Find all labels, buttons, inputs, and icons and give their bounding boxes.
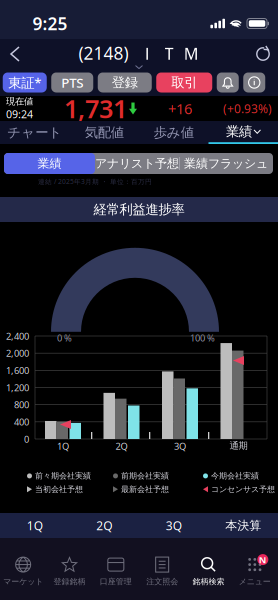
staticText: チャート — [7, 124, 62, 141]
staticText: 取引 — [171, 74, 197, 91]
button[interactable]: 取引 — [156, 72, 212, 92]
button[interactable]: 歩み値 — [139, 121, 208, 144]
button[interactable]: マーケット — [0, 548, 46, 593]
staticText: 1Q — [57, 440, 69, 452]
staticText: 当初会社予想 — [35, 484, 83, 494]
staticText: 2,000 — [6, 347, 29, 359]
staticText: 1Q — [27, 517, 43, 533]
staticText: +16 — [168, 99, 192, 118]
button[interactable]: 3Q — [139, 513, 208, 538]
staticText: 2,400 — [6, 330, 29, 342]
staticText: 通期 — [229, 440, 247, 451]
staticText: 2Q — [96, 517, 112, 533]
button[interactable]: 注文照会 — [139, 548, 185, 593]
staticText: 本決算 — [225, 518, 261, 533]
button[interactable]: Alerts — [217, 72, 239, 92]
button[interactable]: Refresh — [248, 39, 278, 69]
staticText: 連結 / 2025年3月期 ・ 単位：百万円 — [38, 177, 152, 186]
staticText: 0 % — [57, 332, 72, 344]
staticText: 2Q — [115, 440, 127, 452]
staticText: 1,200 — [6, 381, 29, 394]
button[interactable]: チャート — [0, 121, 69, 144]
staticText: (+0.93%) — [223, 100, 272, 116]
button[interactable]: 銘柄検索 — [185, 548, 232, 593]
staticText: 最新会社予想 — [121, 484, 169, 494]
button[interactable]: 業績 — [208, 121, 278, 144]
staticText: N — [259, 553, 267, 566]
button[interactable]: 登録 — [98, 72, 152, 92]
staticText: 業績 — [226, 123, 252, 140]
staticText: 前期会社実績 — [121, 471, 169, 481]
staticText: 気配値 — [85, 124, 124, 141]
staticText: 注文照会 — [146, 577, 178, 586]
button[interactable]: 1Q — [0, 513, 69, 538]
staticText: 歩み値 — [154, 124, 194, 141]
staticText: マーケット — [3, 577, 43, 586]
button[interactable]: 登録銘柄 — [46, 548, 93, 593]
staticText: アナリスト予想 — [95, 156, 179, 171]
button[interactable]: 東証* — [3, 72, 47, 92]
button[interactable]: Back — [0, 39, 30, 69]
button[interactable]: 本決算 — [208, 513, 278, 538]
staticText: (2148) Ｉ Ｔ Ｍ — [78, 41, 199, 64]
staticText: コンセンサス予想 — [211, 484, 275, 494]
staticText: 今期会社実績 — [211, 471, 259, 481]
button[interactable]: N — [232, 548, 278, 593]
staticText: 東証* — [8, 74, 41, 91]
staticText: 経常利益進捗率 — [93, 201, 184, 218]
button[interactable]: 気配値 — [69, 121, 139, 144]
staticText: 800 — [14, 399, 29, 411]
button[interactable]: アナリスト予想 — [95, 153, 179, 174]
staticText: PTS — [61, 74, 83, 91]
staticText: 09:24 — [6, 107, 33, 121]
button[interactable]: PTS — [51, 72, 93, 92]
staticText: 銘柄検索 — [192, 577, 224, 586]
button[interactable]: 業績フラッシュ — [179, 153, 273, 174]
staticText: 1,600 — [6, 364, 29, 377]
staticText: 登録 — [112, 74, 138, 91]
staticText: 0 — [24, 433, 29, 445]
button[interactable]: 口座管理 — [93, 548, 139, 593]
staticText: 3Q — [174, 440, 186, 452]
staticText: 業績 — [37, 156, 61, 171]
staticText: 前々期会社実績 — [35, 471, 91, 481]
staticText: 400 — [14, 416, 29, 428]
button[interactable]: Information — [243, 72, 265, 92]
staticText: 1,731 — [64, 92, 127, 125]
staticText: 3Q — [166, 517, 182, 533]
staticText: 業績フラッシュ — [184, 156, 268, 171]
button[interactable]: 業績 — [4, 153, 95, 174]
staticText: 現在値 — [6, 96, 33, 107]
staticText: 9:25 — [32, 12, 67, 35]
staticText: メニュー — [239, 577, 271, 586]
staticText: 登録銘柄 — [53, 577, 85, 586]
button[interactable]: 2Q — [69, 513, 139, 538]
staticText: 口座管理 — [100, 577, 132, 586]
staticText: 100 % — [190, 332, 215, 344]
